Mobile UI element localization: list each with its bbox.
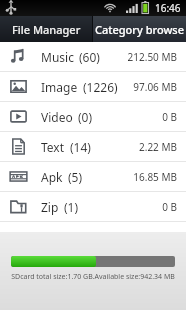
other: Apk [9, 167, 28, 186]
staticText: (60) [79, 49, 100, 65]
button[interactable]: Text [0, 132, 186, 161]
button[interactable]: Zip [0, 192, 186, 221]
staticText: (5) [68, 169, 83, 185]
other: Zip [9, 197, 28, 216]
button[interactable]: Image [0, 72, 186, 101]
button[interactable]: Video [0, 102, 186, 131]
staticText: 97.06 MB [133, 80, 177, 94]
staticText: (0) [78, 109, 93, 125]
staticText: (1) [64, 199, 79, 215]
button[interactable]: Music [0, 42, 186, 71]
other: Image [9, 77, 28, 96]
other: Music [9, 47, 28, 66]
staticText: Music [41, 49, 74, 65]
staticText: Category browse [95, 22, 184, 37]
staticText: Image [41, 79, 78, 95]
staticText: Video [41, 109, 73, 125]
staticText: Apk [41, 169, 63, 185]
other: Text [9, 137, 28, 156]
staticText: File Manager [12, 22, 81, 37]
staticText: SDcard total size:1.70 GB.Available size… [11, 272, 175, 282]
button[interactable]: Category browse [93, 16, 186, 42]
staticText: 0 B [162, 110, 177, 124]
staticText: 16:46 [155, 1, 181, 15]
staticText: 0 B [162, 200, 177, 214]
staticText: 212.50 MB [127, 50, 177, 64]
staticText: (1226) [83, 79, 118, 95]
staticText: 2.22 MB [138, 140, 177, 154]
button[interactable]: File Manager [0, 16, 92, 42]
other: Video [9, 107, 28, 126]
button[interactable]: Apk [0, 162, 186, 191]
staticText: (14) [70, 139, 91, 155]
staticText: 16.85 MB [133, 170, 177, 184]
staticText: Text [41, 139, 65, 155]
staticText: Zip [41, 199, 59, 215]
